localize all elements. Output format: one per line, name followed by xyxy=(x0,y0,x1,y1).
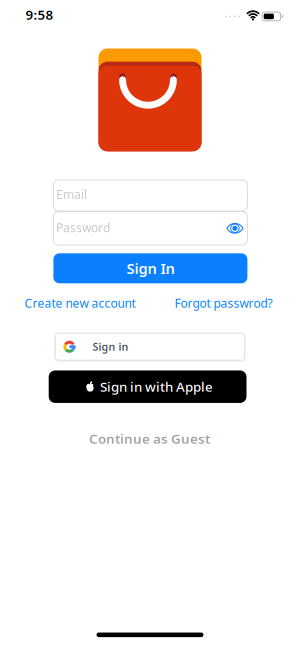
button[interactable]: Create new account xyxy=(24,295,135,311)
button[interactable]: Show password xyxy=(226,223,247,234)
staticText: 9:58 xyxy=(25,6,53,23)
staticText: Sign In xyxy=(126,259,174,278)
staticText: Continue as Guest xyxy=(89,430,210,447)
button[interactable]: Sign in with Apple xyxy=(49,370,246,403)
button[interactable]: Forgot passwrod? xyxy=(174,295,272,311)
staticText: Sign in xyxy=(92,340,128,354)
button[interactable]: Sign In xyxy=(53,253,247,283)
staticText: Forgot passwrod? xyxy=(174,295,272,311)
staticText: Email xyxy=(56,186,87,202)
staticText: Sign in with Apple xyxy=(100,378,213,395)
button[interactable]: Continue as Guest xyxy=(89,430,210,447)
button[interactable]: Sign in xyxy=(55,333,244,360)
staticText: Create new account xyxy=(24,295,135,311)
staticText: Password xyxy=(56,219,110,235)
